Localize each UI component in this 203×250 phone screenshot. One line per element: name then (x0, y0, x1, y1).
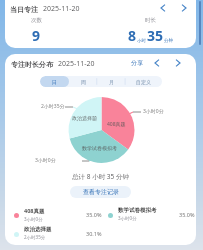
staticText: 2小时35分 (24, 234, 46, 240)
staticText: 自定义 (136, 79, 151, 85)
staticText: 35 (147, 26, 164, 45)
staticText: 数学试卷模拟考 (118, 207, 157, 214)
staticText: 2025-11-20 (58, 59, 95, 69)
staticText: 分钟 (164, 38, 173, 44)
staticText: 30.1% (86, 230, 102, 237)
staticText: 408真题 (24, 207, 45, 215)
staticText: 数学试卷模拟考 (82, 145, 117, 151)
button[interactable]: Previous day (151, 57, 163, 69)
staticText: 3小时0分 (35, 157, 56, 164)
staticText: 9 (32, 26, 41, 45)
button[interactable]: 日 (40, 76, 69, 87)
staticText: 3小时0分 (118, 215, 137, 221)
staticText: 当日专注 (10, 5, 38, 14)
staticText: 月 (109, 79, 114, 85)
staticText: 3小时0分 (143, 108, 164, 115)
staticText: 小时 (137, 38, 146, 44)
staticText: 2小时35分 (41, 103, 65, 110)
staticText: 8 (128, 26, 137, 45)
staticText: 专注时长分布 (11, 60, 53, 69)
staticText: 408真题 (107, 121, 126, 128)
staticText: 政治选择题 (24, 226, 52, 233)
staticText: 查看专注记录 (83, 188, 119, 196)
button[interactable]: 政治选择题 (14, 226, 102, 240)
button[interactable]: 分享 (129, 57, 145, 69)
staticText: 35.0% (86, 211, 102, 218)
button[interactable]: 自定义 (125, 76, 162, 87)
button[interactable]: 月 (97, 76, 125, 87)
staticText: 日 (52, 79, 57, 85)
staticText: 次数 (31, 17, 42, 24)
staticText: 分享 (131, 59, 143, 67)
staticText: 总计 8 小时 35 分钟 (5, 172, 196, 181)
staticText: 2025-11-20 (43, 4, 80, 14)
button[interactable]: Previous day (157, 2, 169, 14)
button[interactable]: Next day (178, 2, 190, 14)
staticText: 政治选择题 (72, 115, 97, 121)
staticText: 35.0% (179, 211, 195, 218)
button[interactable]: Next day (172, 57, 184, 69)
button[interactable]: 数学试卷模拟考 (108, 207, 195, 221)
staticText: 周 (81, 79, 86, 85)
button[interactable]: 周 (69, 76, 97, 87)
staticText: 3小时0分 (24, 216, 43, 222)
staticText: 时长 (145, 17, 156, 24)
button[interactable]: 查看专注记录 (70, 186, 131, 198)
button[interactable]: 408真题 (14, 207, 102, 222)
